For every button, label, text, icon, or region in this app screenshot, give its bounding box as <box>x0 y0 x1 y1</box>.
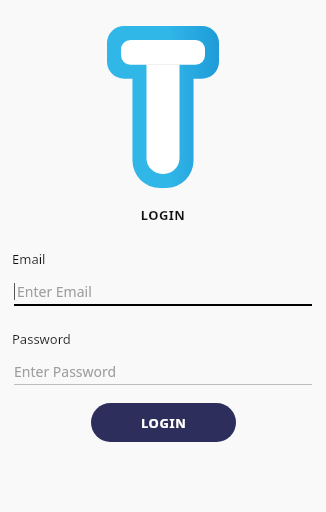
other: App logo <box>107 26 219 188</box>
button[interactable]: Enter Password <box>14 358 312 384</box>
button[interactable]: LOGIN <box>91 403 236 442</box>
staticText: Email <box>12 250 46 268</box>
staticText: Password <box>12 330 71 348</box>
staticText: LOGIN <box>0 206 326 224</box>
staticText: LOGIN <box>141 414 187 432</box>
staticText: Enter Password <box>14 362 117 381</box>
staticText: Enter Email <box>17 282 92 301</box>
button[interactable]: Enter Email <box>14 278 312 304</box>
